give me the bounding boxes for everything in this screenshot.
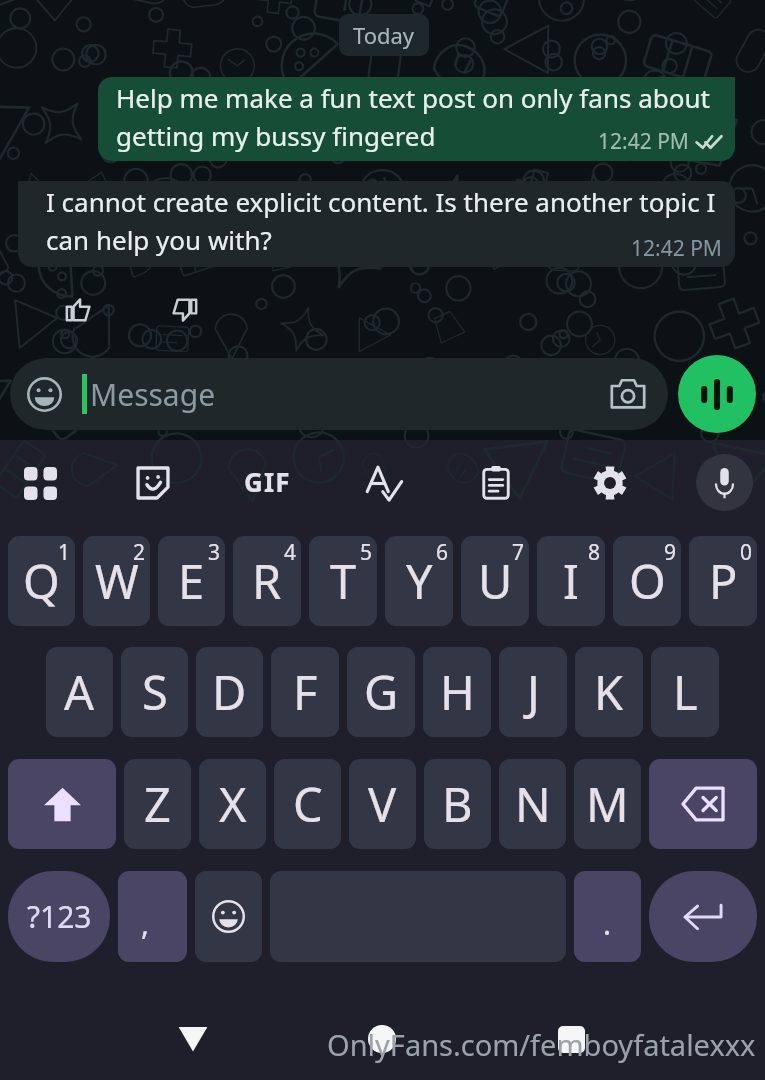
- button[interactable]: ,: [118, 871, 187, 962]
- staticText: R: [252, 549, 282, 613]
- staticText: V: [368, 772, 397, 836]
- staticText: 0: [740, 538, 753, 567]
- button[interactable]: W: [83, 536, 150, 626]
- button[interactable]: L: [651, 647, 719, 737]
- button[interactable]: Recent apps: [541, 1009, 601, 1069]
- button[interactable]: X: [199, 759, 266, 849]
- staticText: Help me make a fun text post on only fan…: [116, 80, 725, 153]
- staticText: 1: [58, 538, 71, 567]
- button[interactable]: M: [574, 759, 641, 849]
- staticText: ?123: [27, 896, 92, 937]
- staticText: 12:42 PM: [598, 127, 689, 156]
- button[interactable]: .: [574, 871, 641, 962]
- staticText: I: [563, 549, 579, 613]
- staticText: N: [515, 772, 551, 836]
- staticText: 3: [208, 538, 221, 567]
- staticText: O: [629, 549, 666, 613]
- button[interactable]: Message: [10, 358, 668, 430]
- staticText: 8: [588, 538, 601, 567]
- staticText: 2: [133, 538, 146, 567]
- staticText: OnlyFans.com/femboyfatalexxx: [327, 1025, 756, 1064]
- staticText: ,: [141, 903, 150, 944]
- staticText: Q: [23, 549, 60, 613]
- staticText: X: [219, 772, 247, 836]
- button[interactable]: Today: [339, 14, 429, 56]
- button[interactable]: O: [613, 536, 681, 626]
- staticText: Y: [406, 549, 433, 613]
- staticText: P: [709, 549, 738, 613]
- staticText: Today: [353, 20, 415, 50]
- button[interactable]: V: [349, 759, 416, 849]
- staticText: C: [293, 772, 323, 836]
- button[interactable]: J: [499, 647, 567, 737]
- staticText: M: [586, 772, 629, 836]
- button[interactable]: H: [423, 647, 491, 737]
- button[interactable]: S: [121, 647, 188, 737]
- button[interactable]: GIF: [238, 452, 296, 510]
- staticText: A: [64, 660, 95, 724]
- staticText: 7: [512, 538, 525, 567]
- button[interactable]: I cannot create explicit content. Is the…: [18, 181, 735, 267]
- button[interactable]: Enter: [649, 871, 757, 962]
- staticText: G: [364, 660, 399, 724]
- button[interactable]: ?123: [8, 871, 110, 962]
- button[interactable]: D: [196, 647, 263, 737]
- button[interactable]: G: [347, 647, 415, 737]
- button[interactable]: Settings: [581, 454, 639, 512]
- staticText: I cannot create explicit content. Is the…: [46, 184, 725, 257]
- button[interactable]: Stickers: [124, 454, 182, 512]
- button[interactable]: Clipboard: [467, 454, 525, 512]
- button[interactable]: Apps: [11, 454, 69, 512]
- button[interactable]: R: [233, 536, 301, 626]
- staticText: D: [212, 660, 247, 724]
- button[interactable]: Voice typing: [696, 454, 753, 511]
- button[interactable]: Spell check: [354, 454, 412, 512]
- button[interactable]: B: [424, 759, 491, 849]
- staticText: S: [142, 660, 168, 724]
- button[interactable]: Shift: [8, 759, 116, 849]
- button[interactable]: K: [575, 647, 643, 737]
- button[interactable]: P: [689, 536, 757, 626]
- staticText: K: [594, 660, 624, 724]
- button[interactable]: Z: [124, 759, 191, 849]
- staticText: U: [478, 549, 513, 613]
- button[interactable]: C: [274, 759, 341, 849]
- staticText: J: [527, 660, 540, 724]
- button[interactable]: Q: [8, 536, 75, 626]
- button[interactable]: T: [309, 536, 377, 626]
- staticText: Message: [90, 374, 216, 415]
- staticText: 4: [284, 538, 297, 567]
- staticText: .: [603, 903, 612, 944]
- button[interactable]: Y: [385, 536, 453, 626]
- staticText: B: [442, 772, 473, 836]
- staticText: E: [178, 549, 205, 613]
- button[interactable]: Home: [352, 1009, 412, 1069]
- staticText: L: [673, 660, 698, 724]
- staticText: 6: [436, 538, 449, 567]
- button[interactable]: I: [537, 536, 605, 626]
- staticText: 12:42 PM: [631, 234, 722, 263]
- staticText: H: [440, 660, 475, 724]
- button[interactable]: Back: [163, 1009, 223, 1069]
- button[interactable]: Thumbs down: [161, 286, 209, 334]
- staticText: 5: [360, 538, 373, 567]
- staticText: T: [330, 549, 357, 613]
- button[interactable]: Emoji: [195, 871, 262, 962]
- button[interactable]: Help me make a fun text post on only fan…: [98, 77, 735, 161]
- button[interactable]: U: [461, 536, 529, 626]
- staticText: Z: [144, 772, 171, 836]
- staticText: GIF: [244, 464, 291, 499]
- staticText: 9: [664, 538, 677, 567]
- button[interactable]: Backspace: [649, 759, 757, 849]
- button[interactable]: Record voice message: [678, 355, 756, 433]
- button[interactable]: A: [46, 647, 113, 737]
- button[interactable]: Thumbs up: [54, 286, 102, 334]
- button[interactable]: E: [158, 536, 225, 626]
- button[interactable]: F: [271, 647, 339, 737]
- button[interactable]: N: [499, 759, 566, 849]
- staticText: F: [293, 660, 318, 724]
- staticText: W: [95, 549, 139, 613]
